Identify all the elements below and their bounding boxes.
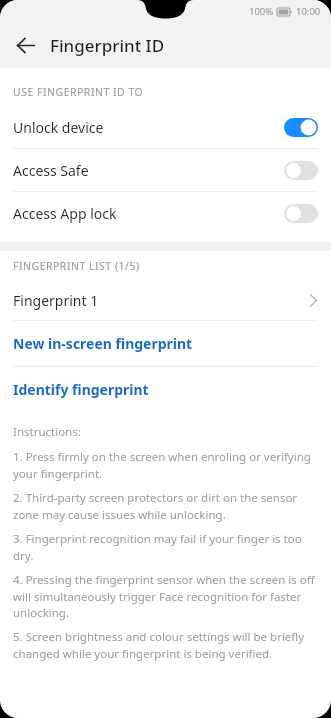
button[interactable]: Identify fingerprint xyxy=(0,367,331,412)
button[interactable]: Fingerprint 1 xyxy=(0,280,331,320)
staticText: Fingerprint 1 xyxy=(13,291,99,310)
button[interactable]: Access Safe xyxy=(0,149,331,191)
button[interactable]: New in-screen fingerprint xyxy=(0,321,331,366)
staticText: 5. Screen brightness and colour settings… xyxy=(13,629,318,661)
staticText: Unlock device xyxy=(13,118,104,137)
button[interactable]: Back xyxy=(8,28,42,62)
staticText: Access Safe xyxy=(13,161,89,180)
staticText: Instructions: xyxy=(13,424,318,440)
button[interactable]: Unlock device xyxy=(0,106,331,148)
staticText: Fingerprint ID xyxy=(50,34,165,57)
staticText: 4. Pressing the fingerprint sensor when … xyxy=(13,572,318,620)
staticText: 2. Third-party screen protectors or dirt… xyxy=(13,490,318,522)
staticText: 1. Press firmly on the screen when enrol… xyxy=(13,449,318,481)
staticText: 10:00 xyxy=(296,5,321,18)
staticText: Identify fingerprint xyxy=(13,380,149,399)
button[interactable]: Access App lock xyxy=(0,192,331,234)
staticText: USE FINGERPRINT ID TO xyxy=(13,85,144,99)
staticText: 3. Fingerprint recognition may fail if y… xyxy=(13,531,318,563)
staticText: New in-screen fingerprint xyxy=(13,334,193,353)
staticText: Access App lock xyxy=(13,204,117,223)
staticText: 100% xyxy=(249,5,274,18)
staticText: FINGERPRINT LIST (1/5) xyxy=(13,259,140,273)
